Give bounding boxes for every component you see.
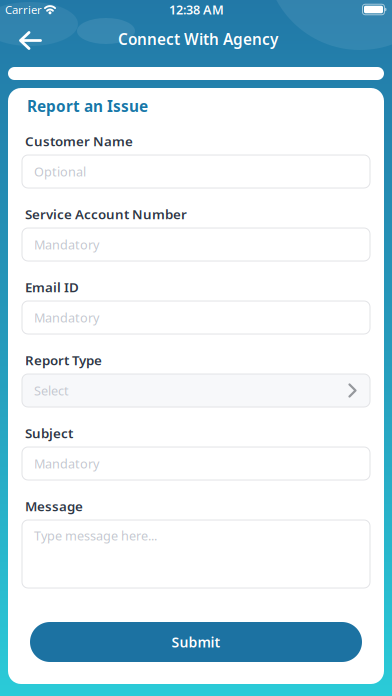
staticText: Mandatory xyxy=(34,455,99,472)
staticText: Optional xyxy=(34,163,86,180)
button[interactable]: Select xyxy=(22,374,370,407)
staticText: Report Type xyxy=(25,351,102,369)
button[interactable]: Back xyxy=(16,29,46,51)
staticText: Email ID xyxy=(25,278,79,296)
staticText: Submit xyxy=(171,632,220,652)
staticText: Carrier xyxy=(5,2,42,17)
staticText: Mandatory xyxy=(34,309,99,326)
button[interactable]: Submit xyxy=(30,622,362,662)
staticText: Select xyxy=(34,382,69,399)
staticText: Report an Issue xyxy=(27,96,148,116)
staticText: Message xyxy=(25,497,83,515)
staticText: Type message here... xyxy=(34,527,157,544)
staticText: Mandatory xyxy=(34,236,99,253)
staticText: Subject xyxy=(25,424,73,442)
staticText: Service Account Number xyxy=(25,205,187,223)
staticText: Connect With Agency xyxy=(118,29,278,49)
staticText: Customer Name xyxy=(25,132,133,150)
staticText: 12:38 AM xyxy=(169,1,224,18)
